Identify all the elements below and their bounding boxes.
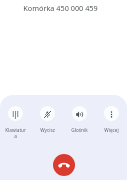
button[interactable]: More <box>95 106 127 133</box>
button[interactable]: End call <box>53 154 75 176</box>
staticText: Wycisz <box>40 127 55 133</box>
button[interactable]: Dialpad <box>0 106 31 140</box>
other: Dialpad <box>8 106 23 121</box>
button[interactable]: Speaker <box>63 106 95 133</box>
other: More <box>104 106 119 121</box>
staticText: Komórka 450 000 459 <box>23 3 98 13</box>
staticText: Więcej <box>104 127 119 133</box>
other: Mute <box>40 106 55 121</box>
staticText: Głośnik <box>71 127 88 133</box>
staticText: Klawiatura <box>5 127 26 140</box>
other: Speaker <box>72 106 87 121</box>
button[interactable]: Mute <box>31 106 63 133</box>
